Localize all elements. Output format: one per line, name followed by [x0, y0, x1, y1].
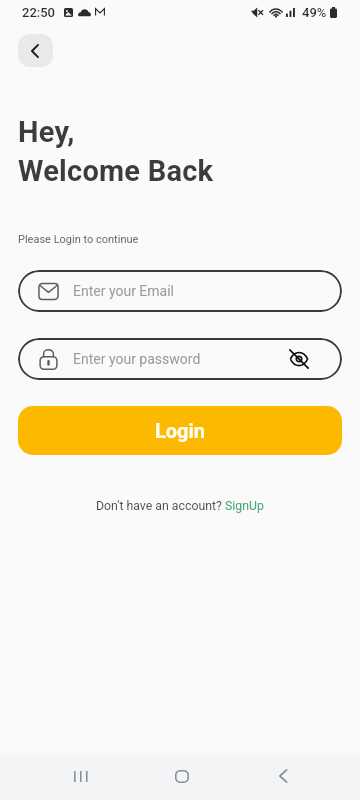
staticText: 22:50	[22, 5, 55, 20]
button[interactable]: Show password	[279, 339, 319, 379]
button[interactable]: Login	[18, 406, 342, 455]
button[interactable]: SignUp	[225, 499, 264, 513]
staticText: 49%	[302, 5, 327, 20]
button[interactable]: Enter your Email	[18, 270, 342, 312]
staticText: Don't have an account?	[96, 499, 225, 513]
staticText: Login	[155, 419, 206, 442]
button[interactable]: Back	[259, 756, 307, 796]
button[interactable]: Recent apps	[56, 756, 105, 796]
button[interactable]: Home	[158, 756, 206, 796]
staticText: Enter your password	[73, 351, 201, 367]
button[interactable]: Enter your password	[18, 338, 342, 380]
staticText: SignUp	[225, 499, 264, 513]
staticText: Enter your Email	[73, 283, 175, 299]
button[interactable]: Back	[18, 34, 53, 67]
staticText: Hey,	[18, 115, 75, 149]
staticText: Welcome Back	[18, 154, 214, 188]
staticText: Please Login to continue	[18, 233, 139, 246]
